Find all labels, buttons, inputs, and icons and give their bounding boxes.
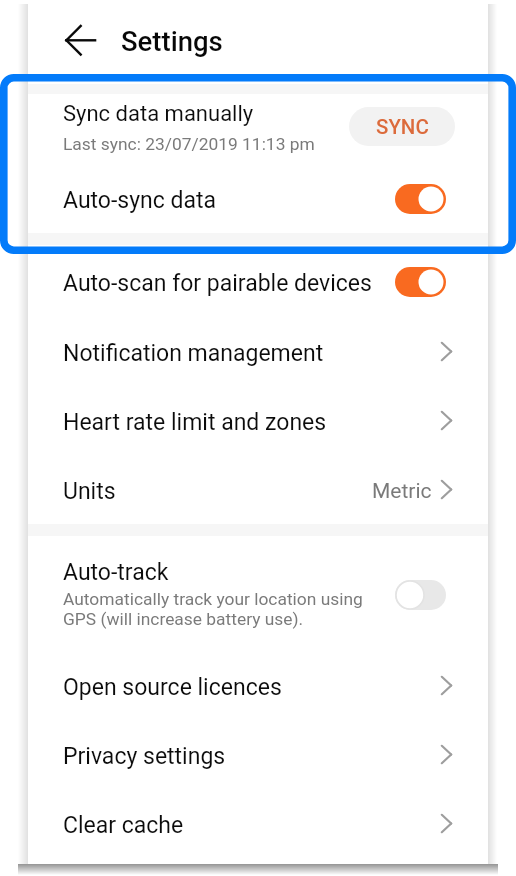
staticText: Notification management: [63, 340, 324, 367]
button[interactable]: Auto-scan for pairable devices: [28, 248, 488, 317]
staticText: Auto-sync data: [63, 187, 217, 214]
button[interactable]: Toggle on: [395, 267, 446, 297]
button[interactable]: Toggle on: [395, 184, 446, 214]
button[interactable]: Notification management: [28, 318, 488, 387]
staticText: Privacy settings: [63, 743, 226, 770]
staticText: Auto-scan for pairable devices: [63, 270, 372, 297]
button[interactable]: Heart rate limit and zones: [28, 387, 488, 456]
button[interactable]: Open source licences: [28, 652, 488, 721]
button[interactable]: Privacy settings: [28, 721, 488, 790]
button[interactable]: Units: [28, 456, 488, 524]
staticText: Metric: [372, 479, 432, 504]
staticText: Heart rate limit and zones: [63, 409, 327, 436]
staticText: Open source licences: [63, 674, 282, 701]
staticText: Clear cache: [63, 812, 184, 839]
staticText: Automatically track your location using …: [63, 589, 363, 630]
button[interactable]: SYNC: [349, 107, 455, 146]
button[interactable]: Auto-track: [28, 537, 488, 645]
button[interactable]: Back: [61, 16, 109, 64]
button[interactable]: Auto-sync data: [28, 166, 488, 233]
staticText: Auto-track: [63, 559, 169, 586]
staticText: Last sync: 23/07/2019 11:13 pm: [63, 134, 315, 154]
staticText: Settings: [121, 25, 223, 57]
staticText: Units: [63, 478, 116, 505]
staticText: Sync data manually: [63, 101, 254, 127]
button[interactable]: Auto-track toggle off: [395, 580, 446, 610]
button[interactable]: Clear cache: [28, 790, 488, 859]
button[interactable]: Sync data manually: [28, 92, 488, 168]
staticText: SYNC: [376, 115, 429, 139]
